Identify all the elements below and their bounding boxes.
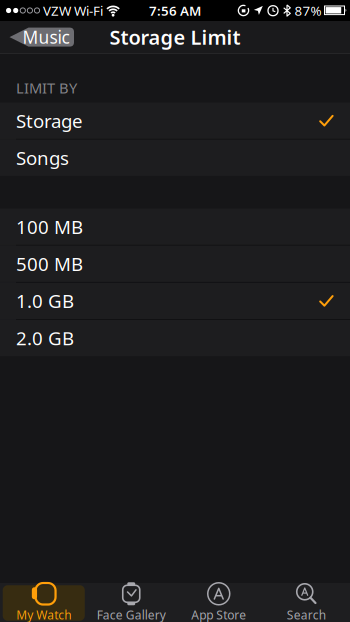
- staticText: Storage Limit: [109, 24, 240, 50]
- staticText: 500 MB: [16, 251, 83, 276]
- button[interactable]: 2.0 GB: [0, 320, 350, 356]
- staticText: LIMIT BY: [16, 78, 77, 97]
- staticText: 100 MB: [16, 214, 83, 239]
- staticText: Music: [22, 26, 69, 49]
- button[interactable]: Songs: [0, 140, 350, 176]
- staticText: 87%: [294, 2, 321, 19]
- staticText: 1.0 GB: [16, 288, 74, 313]
- staticText: Search: [287, 607, 326, 622]
- button[interactable]: 1.0 GB: [0, 283, 350, 319]
- button[interactable]: Storage: [0, 102, 350, 139]
- staticText: App Store: [191, 607, 246, 622]
- button[interactable]: Music: [9, 27, 74, 47]
- staticText: 2.0 GB: [16, 326, 74, 350]
- button[interactable]: Face Gallery: [87, 583, 175, 622]
- button[interactable]: 100 MB: [0, 208, 350, 245]
- button[interactable]: Search: [262, 583, 350, 622]
- staticText: Face Gallery: [97, 607, 166, 622]
- staticText: Storage: [16, 108, 83, 133]
- button[interactable]: 500 MB: [0, 246, 350, 282]
- staticText: 7:56 AM: [149, 2, 201, 19]
- staticText: VZW Wi-Fi: [43, 2, 103, 19]
- staticText: My Watch: [16, 607, 71, 622]
- button[interactable]: App Store: [175, 583, 262, 622]
- staticText: Songs: [16, 145, 69, 170]
- button[interactable]: My Watch: [0, 583, 87, 622]
